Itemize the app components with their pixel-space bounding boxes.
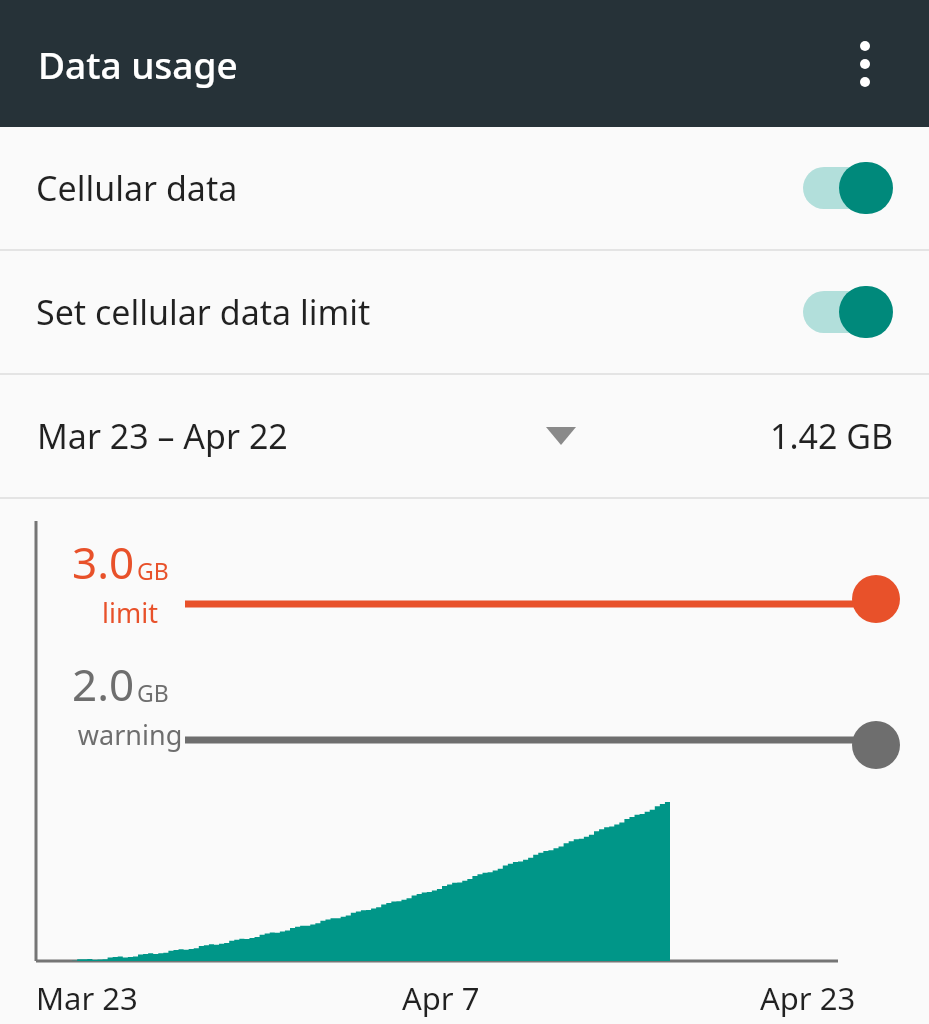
staticText: Mar 23 – Apr 22: [37, 413, 288, 459]
staticText: 3.0: [72, 532, 135, 592]
staticText: GB: [137, 677, 169, 708]
button[interactable]: Cellular data: [0, 127, 929, 249]
staticText: Mar 23: [36, 977, 138, 1019]
staticText: 2.0: [72, 654, 135, 714]
button[interactable]: Mar 23 – Apr 22: [0, 375, 929, 497]
staticText: Cellular data: [36, 165, 238, 211]
staticText: 1.42 GB: [770, 413, 894, 459]
staticText: Apr 7: [402, 977, 480, 1019]
staticText: GB: [137, 555, 169, 586]
staticText: Data usage: [38, 39, 238, 89]
staticText: Apr 23: [760, 977, 856, 1019]
staticText: limit: [72, 594, 188, 631]
button[interactable]: Set cellular data limit: [0, 251, 929, 373]
staticText: warning: [72, 716, 188, 753]
staticText: Set cellular data limit: [36, 289, 371, 335]
button[interactable]: More options: [833, 32, 897, 96]
